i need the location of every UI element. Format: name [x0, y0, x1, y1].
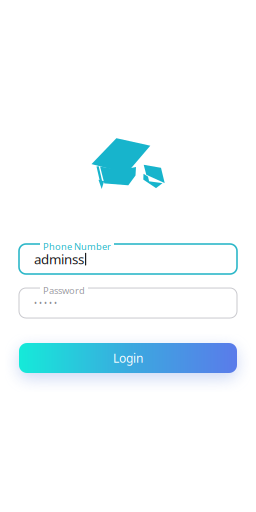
staticText: Password — [43, 284, 85, 297]
staticText: • • • • • — [34, 298, 57, 308]
button[interactable]: adminss — [19, 242, 237, 274]
button[interactable]: Login — [19, 343, 237, 373]
staticText: adminss — [34, 250, 84, 268]
staticText: Login — [113, 350, 143, 366]
staticText: Phone Number — [43, 240, 111, 253]
button[interactable]: • • • • • — [19, 286, 237, 318]
